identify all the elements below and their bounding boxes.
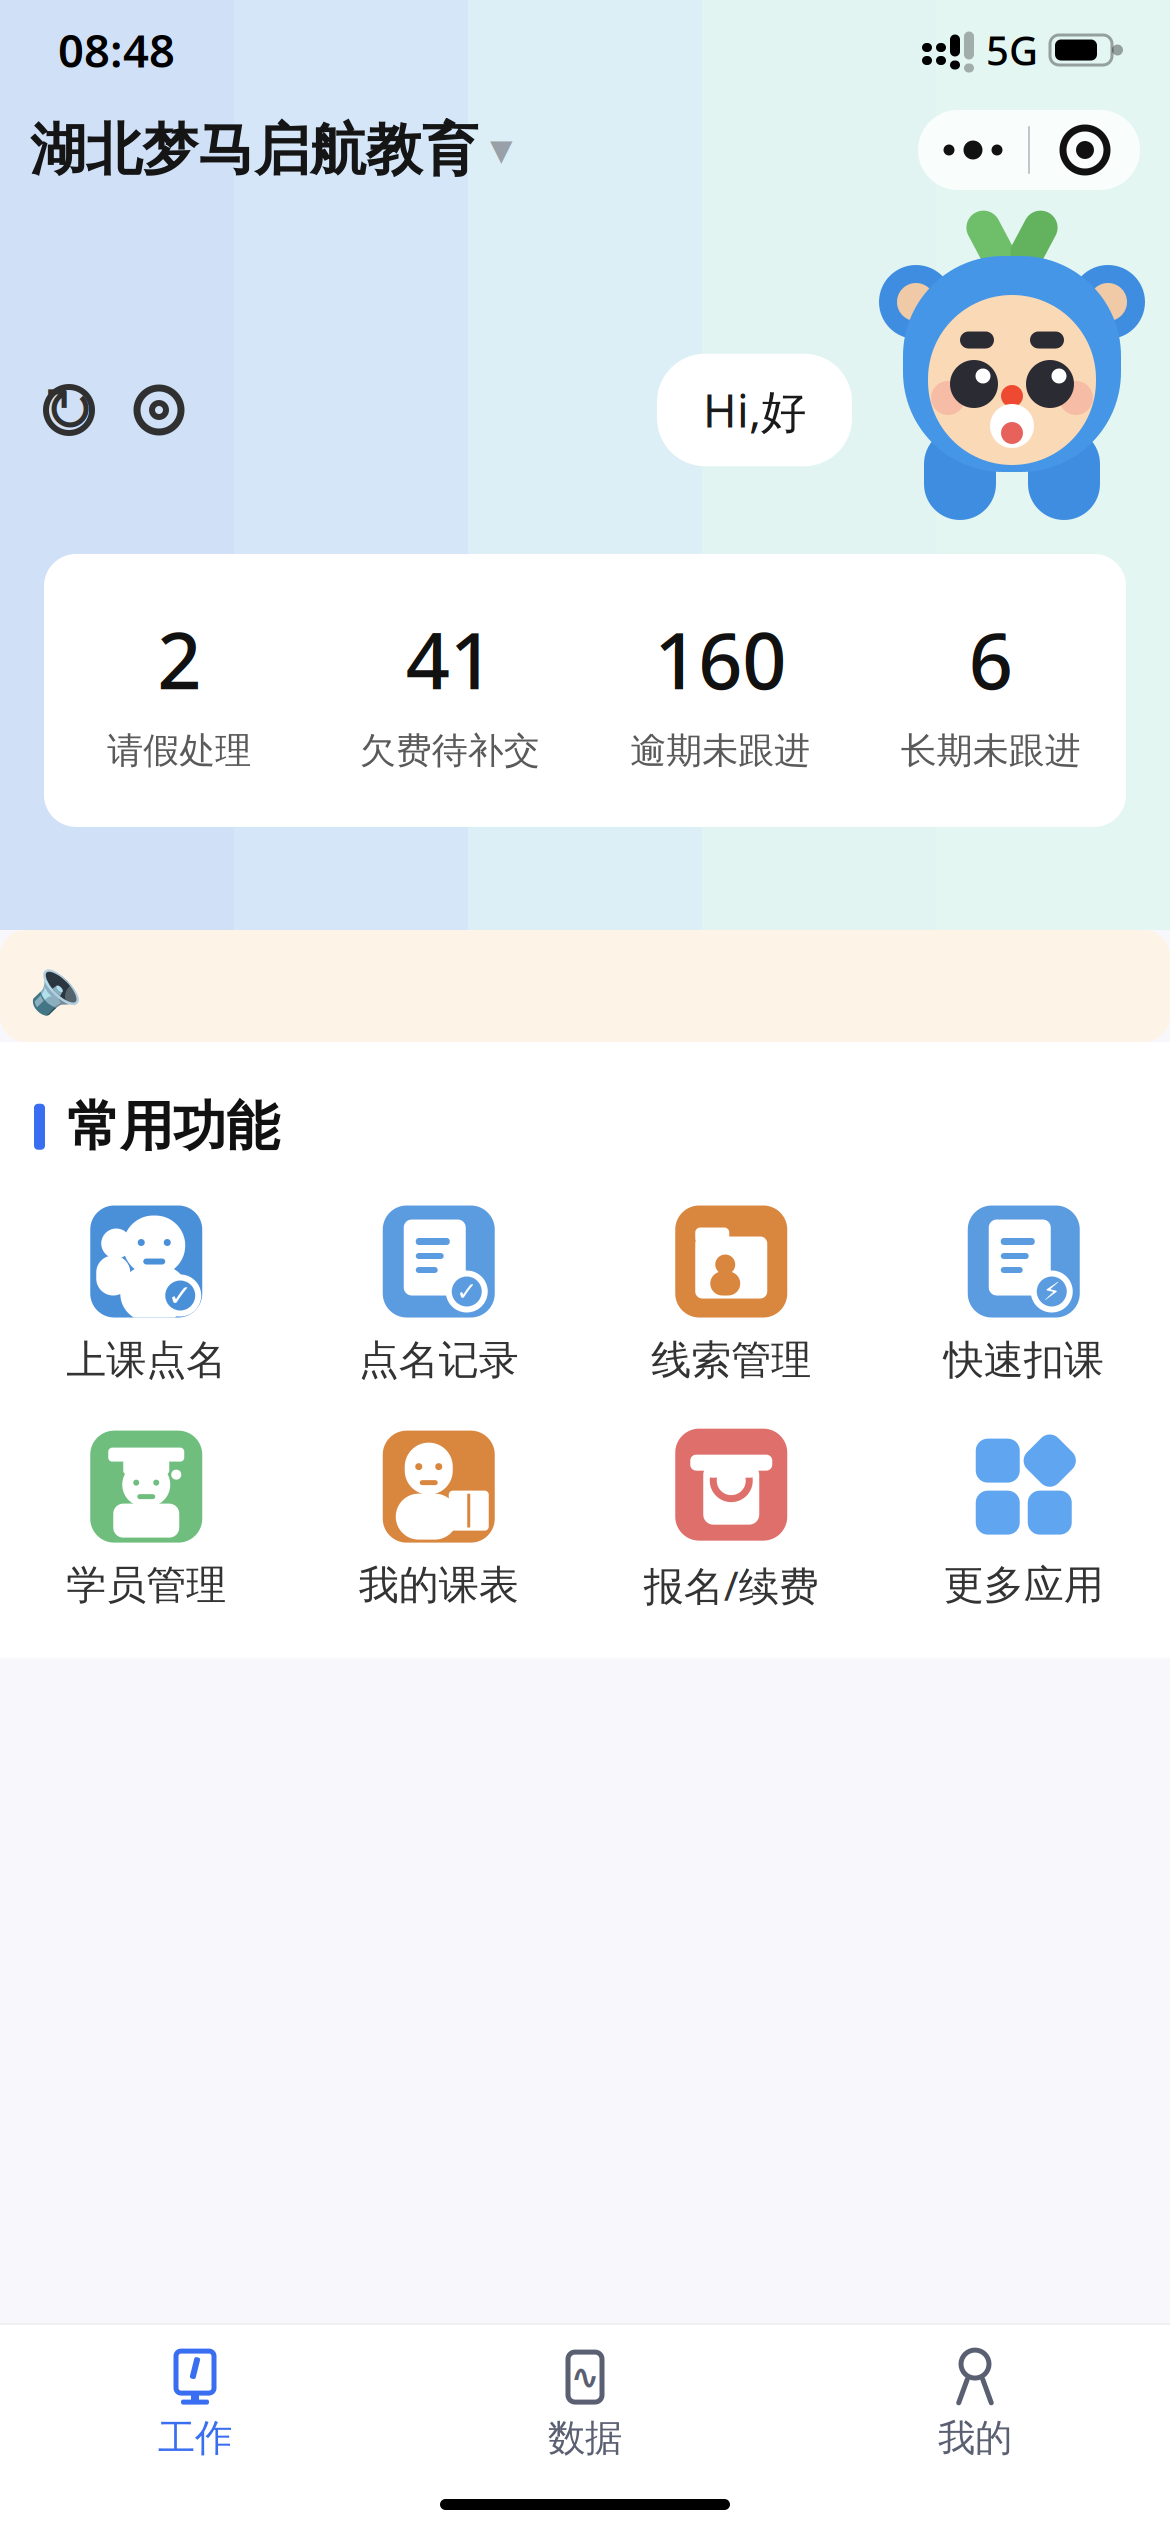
staticText: ▼ — [490, 133, 513, 167]
staticText: 08:48 — [58, 20, 175, 80]
staticText: 快速扣课 — [944, 1335, 1104, 1385]
button[interactable]: 报名/续费 — [585, 1429, 877, 1612]
staticText: 6 — [969, 608, 1013, 711]
staticText: ∿ — [570, 2357, 599, 2397]
staticText: 更多应用 — [944, 1561, 1104, 1610]
staticText: 长期未跟进 — [901, 729, 1081, 773]
staticText: 160 — [654, 608, 786, 711]
button[interactable]: Refresh — [24, 365, 114, 455]
button[interactable]: 6 — [855, 608, 1126, 773]
staticText: ✓ — [168, 1279, 193, 1312]
staticText: 我的课表 — [359, 1561, 519, 1610]
staticText: 常用功能 — [67, 1094, 279, 1159]
button[interactable]: 我的课表 — [292, 1431, 585, 1610]
button[interactable]: 学员管理 — [0, 1431, 292, 1610]
staticText: 工作 — [158, 2415, 232, 2461]
staticText: 学员管理 — [66, 1561, 226, 1610]
staticText: 线索管理 — [651, 1335, 811, 1385]
staticText: 我的 — [938, 2415, 1012, 2461]
staticText: 数据 — [548, 2415, 622, 2461]
button[interactable]: 41 — [314, 608, 585, 773]
button[interactable]: ∿ — [390, 2351, 780, 2461]
button[interactable]: 线索管理 — [585, 1205, 877, 1385]
staticText: 上课点名 — [66, 1335, 226, 1385]
button[interactable]: Close — [1030, 110, 1140, 190]
staticText: Hi,好 — [703, 380, 806, 440]
button[interactable]: ✓ — [0, 1205, 292, 1385]
button[interactable]: 工作 — [0, 2351, 390, 2461]
button[interactable]: 我的 — [780, 2351, 1170, 2461]
staticText: 欠费待补交 — [360, 729, 540, 773]
staticText: 请假处理 — [107, 729, 251, 773]
staticText: 🔈 — [29, 955, 95, 1016]
staticText: 湖北梦马启航教育 — [30, 116, 478, 184]
staticText: ⚡︎ — [1043, 1277, 1061, 1306]
staticText: 41 — [406, 608, 494, 711]
staticText: ↻ — [43, 375, 94, 445]
staticText: 逾期未跟进 — [630, 729, 810, 773]
button[interactable]: ✓ — [292, 1205, 585, 1385]
staticText: 5G — [986, 23, 1038, 76]
button[interactable]: ⚡︎ — [877, 1205, 1170, 1385]
button[interactable]: 2 — [44, 608, 314, 773]
button[interactable]: Settings — [114, 365, 204, 455]
button[interactable]: 160 — [585, 608, 855, 773]
staticText: ✓ — [456, 1277, 477, 1306]
staticText: 点名记录 — [359, 1335, 519, 1385]
button[interactable]: 湖北梦马启航教育 — [30, 116, 513, 184]
button[interactable]: 🔈 — [0, 930, 1170, 1042]
staticText: 2 — [157, 608, 201, 711]
button[interactable]: 更多应用 — [877, 1431, 1170, 1610]
staticText: 报名/续费 — [644, 1559, 819, 1612]
button[interactable]: More — [918, 110, 1028, 190]
